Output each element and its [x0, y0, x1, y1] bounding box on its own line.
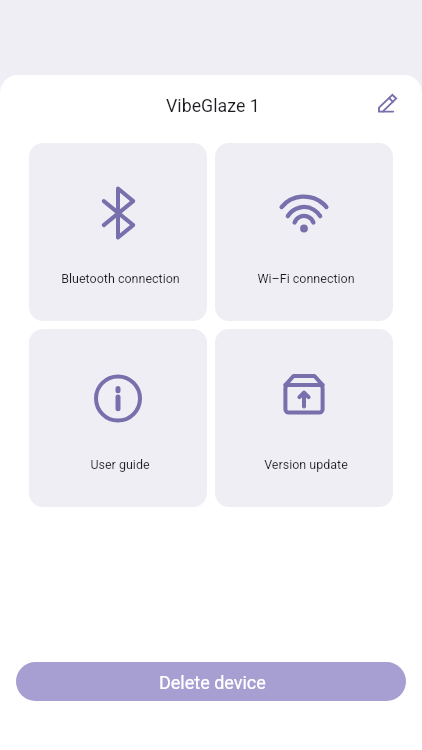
staticText: User guide: [90, 457, 150, 472]
button[interactable]: Rename device: [370, 85, 406, 121]
staticText: Wi–Fi connection: [257, 271, 355, 286]
button[interactable]: User guide: [29, 329, 207, 507]
staticText: VibeGlaze 1: [166, 95, 260, 116]
staticText: Delete device: [159, 672, 266, 693]
button[interactable]: Wi–Fi connection: [215, 143, 393, 321]
staticText: Bluetooth connection: [61, 271, 180, 286]
button[interactable]: Delete device: [16, 662, 406, 701]
button[interactable]: Bluetooth connection: [29, 143, 207, 321]
button[interactable]: Version update: [215, 329, 393, 507]
staticText: Version update: [264, 457, 348, 472]
